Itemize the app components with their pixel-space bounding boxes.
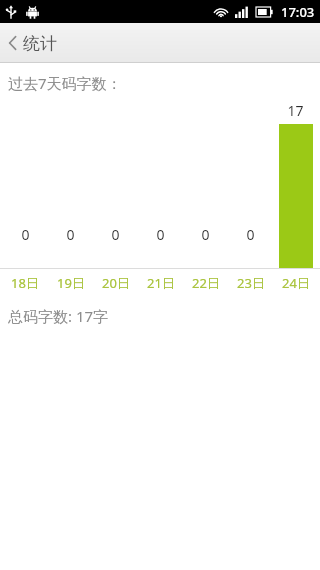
staticText: 22日 [192, 274, 220, 292]
staticText: 19日 [57, 274, 85, 292]
staticText: 0 [21, 225, 30, 244]
staticText: 23日 [237, 274, 265, 292]
staticText: 18日 [11, 274, 39, 292]
staticText: 过去7天码字数： [8, 73, 122, 93]
staticText: 21日 [147, 274, 175, 292]
staticText: 20日 [102, 274, 130, 292]
staticText: 24日 [282, 274, 310, 292]
staticText: 0 [246, 225, 255, 244]
staticText: 17:03 [281, 3, 315, 21]
staticText: 0 [201, 225, 210, 244]
staticText: 总码字数: 17字 [8, 306, 109, 326]
staticText: 统计 [23, 33, 57, 54]
staticText: 0 [111, 225, 120, 244]
staticText: 0 [66, 225, 75, 244]
staticText: 17 [287, 101, 304, 120]
button[interactable]: Back [0, 23, 67, 63]
staticText: 0 [156, 225, 165, 244]
